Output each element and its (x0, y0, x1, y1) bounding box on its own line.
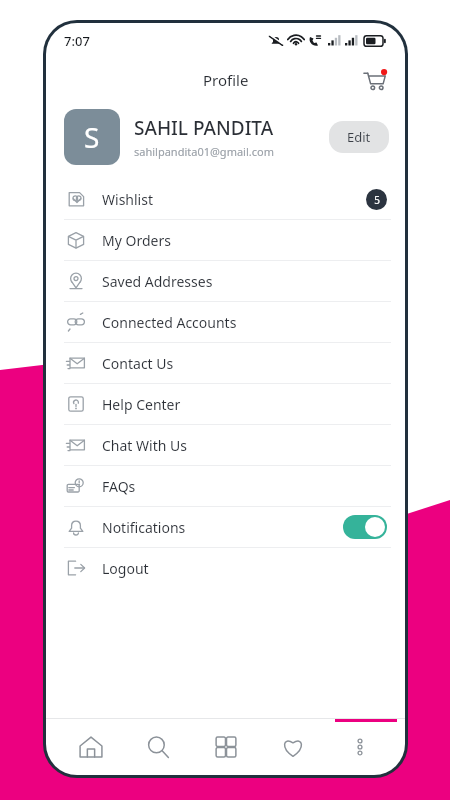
button[interactable]: Chat With Us (46, 425, 405, 465)
staticText: Profile (203, 70, 249, 90)
staticText: FAQs (102, 477, 136, 496)
staticText: Notifications (102, 518, 186, 537)
button[interactable]: FAQs (46, 466, 405, 506)
button[interactable]: Cart (357, 63, 391, 97)
button[interactable]: Contact Us (46, 343, 405, 383)
staticText: My Orders (102, 231, 171, 250)
button[interactable]: More (332, 719, 388, 775)
staticText: 5 (374, 193, 380, 207)
staticText: Chat With Us (102, 436, 187, 455)
button[interactable]: Notifications toggle (343, 515, 387, 539)
staticText: Help Center (102, 395, 181, 414)
button[interactable]: Categories (198, 719, 254, 775)
staticText: Logout (102, 559, 149, 578)
button[interactable]: Wishlist (46, 179, 405, 219)
staticText: Wishlist (102, 190, 153, 209)
button[interactable]: Connected Accounts (46, 302, 405, 342)
button[interactable]: Wishlist (265, 719, 321, 775)
staticText: SAHIL PANDITA (134, 115, 274, 141)
button[interactable]: Help Center (46, 384, 405, 424)
button[interactable]: Notifications (46, 507, 405, 547)
staticText: Edit (347, 128, 371, 146)
button[interactable]: Logout (46, 548, 405, 588)
button[interactable]: Search (130, 719, 186, 775)
staticText: Connected Accounts (102, 313, 237, 332)
staticText: 7:07 (64, 32, 90, 50)
staticText: Saved Addresses (102, 272, 213, 291)
staticText: S (84, 118, 100, 156)
staticText: sahilpandita01@gmail.com (134, 144, 274, 159)
button[interactable]: Home (63, 719, 119, 775)
staticText: Contact Us (102, 354, 174, 373)
button[interactable]: Edit (329, 121, 389, 153)
button[interactable]: My Orders (46, 220, 405, 260)
button[interactable]: Saved Addresses (46, 261, 405, 301)
